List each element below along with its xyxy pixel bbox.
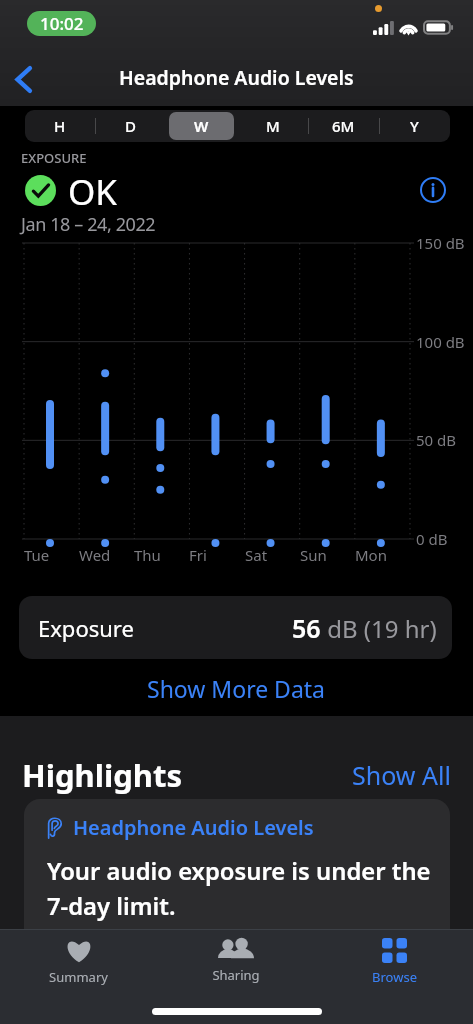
staticText: Sharing xyxy=(212,966,260,984)
staticText: Sun xyxy=(300,545,327,565)
staticText: W xyxy=(194,116,209,136)
staticText: 100 dB xyxy=(416,332,465,352)
staticText: Your audio exposure is under the 7-day l… xyxy=(47,855,442,922)
staticText: dB (19 hr) xyxy=(321,612,437,645)
button[interactable]: Headphone Audio Levels xyxy=(24,799,450,969)
staticText: Summary xyxy=(49,968,108,986)
staticText: Wed xyxy=(79,545,111,565)
staticText: Show More Data xyxy=(147,673,326,704)
staticText: Y xyxy=(410,116,419,136)
staticText: EXPOSURE xyxy=(21,149,87,167)
button[interactable]: M xyxy=(240,112,305,140)
button[interactable]: H xyxy=(28,112,92,140)
button[interactable]: Sharing xyxy=(157,929,315,991)
staticText: 50 dB xyxy=(416,430,457,450)
staticText: OK xyxy=(68,168,118,212)
staticText: Sat xyxy=(245,545,268,565)
staticText: Thu xyxy=(134,545,161,565)
staticText: M xyxy=(266,116,280,136)
button[interactable]: 6M xyxy=(311,112,376,140)
staticText: Show All xyxy=(352,758,451,786)
staticText: Tue xyxy=(24,545,50,565)
button[interactable]: Info xyxy=(413,170,453,210)
staticText: 56 xyxy=(292,611,321,645)
button[interactable]: Summary xyxy=(0,929,157,991)
staticText: Headphone Audio Levels xyxy=(119,64,354,91)
button[interactable]: Back xyxy=(0,57,46,101)
button[interactable]: W xyxy=(169,112,234,140)
button[interactable]: Browse xyxy=(315,929,473,991)
staticText: H xyxy=(54,116,66,136)
button[interactable]: Show More Data xyxy=(0,665,473,711)
staticText: 0 dB xyxy=(416,529,448,549)
staticText: 10:02 xyxy=(40,12,84,35)
button[interactable]: Exposure xyxy=(19,596,452,659)
staticText: Mon xyxy=(355,545,387,565)
staticText: Fri xyxy=(189,545,207,565)
staticText: D xyxy=(125,116,136,136)
staticText: Highlights xyxy=(22,754,182,796)
staticText: Headphone Audio Levels xyxy=(73,814,314,841)
staticText: Browse xyxy=(372,968,417,986)
button[interactable]: Y xyxy=(382,112,447,140)
button[interactable]: Show All xyxy=(335,758,451,786)
staticText: 6M xyxy=(332,116,355,136)
staticText: Jan 18 – 24, 2022 xyxy=(21,212,156,237)
staticText: Exposure xyxy=(38,613,134,643)
button[interactable]: D xyxy=(98,112,163,140)
staticText: 150 dB xyxy=(416,233,465,253)
